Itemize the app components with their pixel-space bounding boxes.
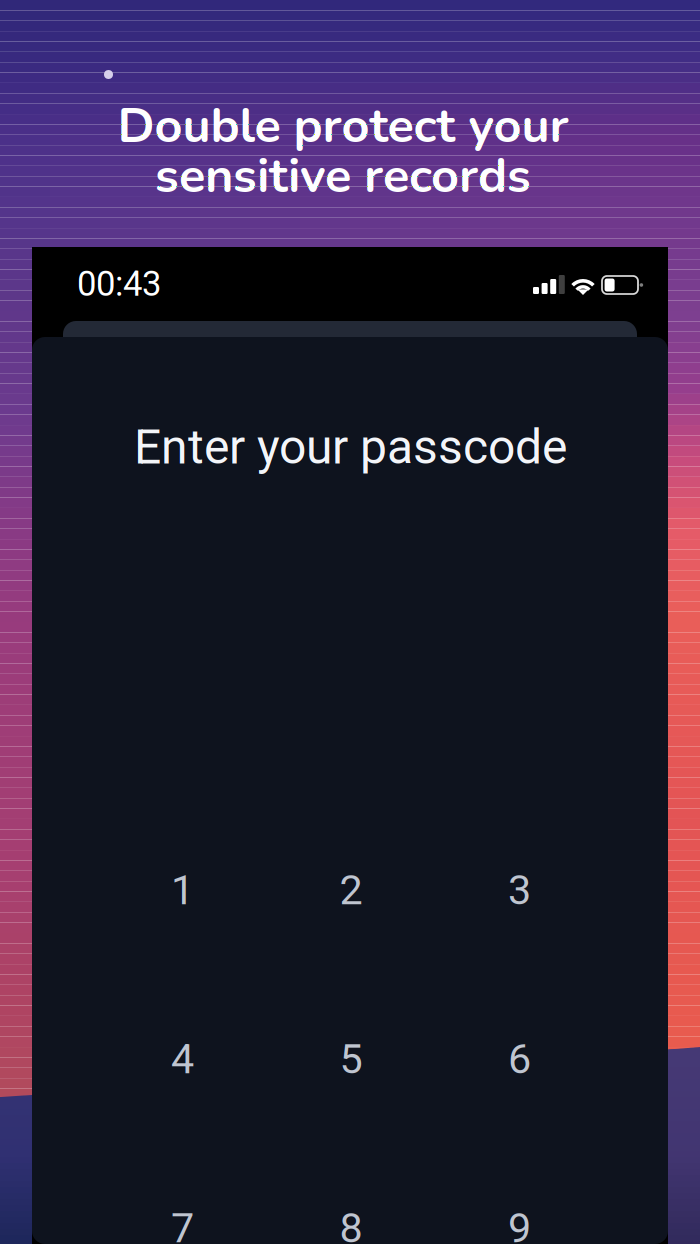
button[interactable]: 9: [435, 1173, 604, 1244]
button[interactable]: 1: [98, 835, 267, 945]
button[interactable]: 7: [98, 1173, 267, 1244]
staticText: 5: [339, 1035, 362, 1083]
button[interactable]: 4: [98, 1004, 267, 1114]
button[interactable]: 6: [435, 1004, 604, 1114]
button[interactable]: 3: [435, 835, 604, 945]
staticText: 9: [508, 1204, 531, 1244]
staticText: sensitive records: [155, 143, 531, 209]
staticText: 2: [339, 866, 362, 914]
button[interactable]: 2: [267, 835, 435, 945]
staticText: 3: [508, 866, 531, 914]
button[interactable]: 8: [267, 1173, 435, 1244]
staticText: 00:43: [77, 264, 161, 304]
staticText: Enter your passcode: [134, 419, 567, 475]
staticText: 7: [171, 1204, 194, 1244]
staticText: 8: [339, 1204, 362, 1244]
staticText: 4: [171, 1035, 194, 1083]
staticText: Double protect your: [117, 93, 568, 159]
staticText: 1: [171, 866, 194, 914]
staticText: 6: [508, 1035, 531, 1083]
button[interactable]: 5: [267, 1004, 435, 1114]
